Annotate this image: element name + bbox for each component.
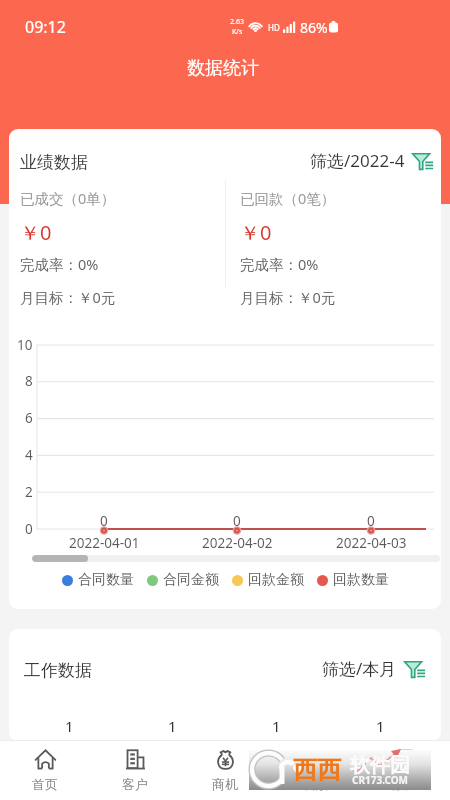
staticText: 已成交（0单） [20, 188, 116, 208]
staticText: 已回款（0笔） [240, 188, 336, 208]
staticText: 客户 [122, 776, 148, 792]
staticText: 首页 [32, 776, 58, 792]
staticText: 工作数据 [24, 660, 92, 681]
staticText: 合同金额 [163, 571, 219, 589]
staticText: 业绩数据 [20, 152, 88, 173]
staticText: HD [268, 22, 280, 33]
staticText: 1 [272, 716, 281, 736]
button[interactable]: 数据 [360, 741, 450, 800]
button[interactable]: 客户 [90, 741, 180, 800]
staticText: 筛选/本月 [322, 657, 397, 680]
staticText: CR173.COM [352, 773, 409, 787]
button[interactable]: 线索 [270, 741, 360, 800]
staticText: 软件园 [350, 753, 410, 778]
staticText: 0 [100, 512, 108, 530]
staticText: 0 [25, 520, 33, 538]
staticText: 0 [367, 512, 375, 530]
staticText: 数据 [392, 776, 418, 792]
button[interactable]: 首页 [0, 741, 90, 800]
staticText: 2.63 [230, 17, 244, 27]
staticText: 月目标：￥0元 [20, 287, 116, 307]
staticText: 回款金额 [248, 571, 304, 589]
staticText: 2022-04-03 [336, 534, 407, 552]
staticText: 6 [25, 409, 33, 427]
staticText: 86% [300, 18, 328, 37]
staticText: 线索 [302, 776, 328, 792]
staticText: ￥0 [20, 219, 52, 246]
staticText: 2022-04-01 [69, 534, 140, 552]
staticText: 8 [25, 372, 33, 390]
staticText: 1 [168, 716, 177, 736]
staticText: K/s [232, 27, 243, 37]
staticText: 完成率：0% [20, 254, 99, 274]
staticText: 合同数量 [78, 571, 134, 589]
staticText: 0 [233, 512, 241, 530]
staticText: 完成率：0% [240, 254, 319, 274]
staticText: 10 [17, 336, 33, 354]
staticText: ￥0 [240, 219, 272, 246]
staticText: 西西 [293, 755, 341, 785]
staticText: 4 [25, 446, 33, 464]
button[interactable]: 商机 [180, 741, 270, 800]
staticText: 09:12 [25, 16, 66, 38]
staticText: 1 [65, 716, 74, 736]
button[interactable]: 筛选/本月 [320, 655, 428, 682]
staticText: 商机 [212, 776, 238, 792]
staticText: 筛选/2022-4 [310, 149, 405, 172]
staticText: 1 [376, 716, 385, 736]
staticText: 回款数量 [333, 571, 389, 589]
staticText: 月目标：￥0元 [240, 287, 336, 307]
staticText: 数据统计 [187, 57, 259, 80]
staticText: 2 [25, 483, 33, 501]
button[interactable]: 筛选/2022-4 [308, 147, 436, 174]
staticText: 2022-04-02 [202, 534, 273, 552]
